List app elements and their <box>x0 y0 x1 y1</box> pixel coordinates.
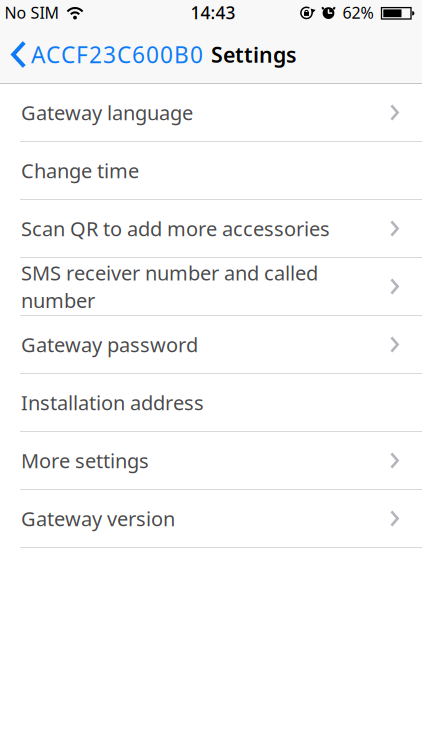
button[interactable]: Change time <box>0 142 422 200</box>
staticText: Settings <box>211 40 297 69</box>
staticText: Change time <box>21 157 139 184</box>
staticText: Installation address <box>21 389 204 416</box>
button[interactable]: Gateway version <box>0 490 422 548</box>
staticText: 62% <box>342 2 373 23</box>
staticText: Gateway language <box>21 99 193 126</box>
button[interactable]: Scan QR to add more accessories <box>0 200 422 258</box>
staticText: 14:43 <box>190 1 235 24</box>
staticText: No SIM <box>4 2 59 23</box>
staticText: SMS receiver number and called number <box>21 259 318 313</box>
staticText: More settings <box>21 447 149 474</box>
staticText: ACCF23C600B0 <box>31 39 203 69</box>
button[interactable]: Gateway language <box>0 84 422 142</box>
button[interactable]: ACCF23C600B0 <box>11 39 203 69</box>
staticText: Gateway version <box>21 505 175 532</box>
staticText: Scan QR to add more accessories <box>21 215 330 242</box>
button[interactable]: More settings <box>0 432 422 490</box>
button[interactable]: SMS receiver number and called number <box>0 258 422 316</box>
button[interactable]: Installation address <box>0 374 422 432</box>
button[interactable]: Gateway password <box>0 316 422 374</box>
staticText: Gateway password <box>21 331 198 358</box>
